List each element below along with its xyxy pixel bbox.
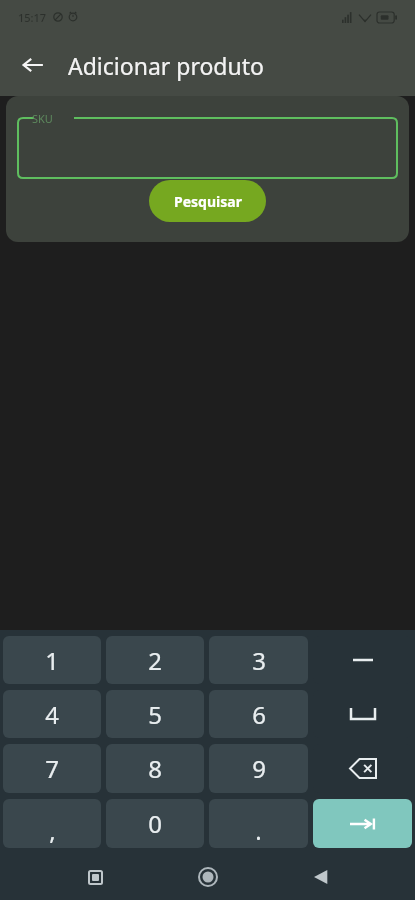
- staticText: 5: [148, 698, 162, 731]
- button[interactable]: 1: [3, 636, 101, 684]
- button[interactable]: Dash: [313, 636, 412, 684]
- button[interactable]: Back: [299, 855, 343, 899]
- staticText: Pesquisar: [174, 192, 242, 211]
- button[interactable]: Pesquisar: [149, 180, 266, 222]
- staticText: 1: [45, 644, 59, 677]
- button[interactable]: ,: [3, 799, 101, 848]
- staticText: 9: [252, 752, 266, 785]
- staticText: ,: [49, 814, 56, 847]
- staticText: 2: [148, 644, 162, 677]
- staticText: Adicionar produto: [68, 50, 264, 81]
- button[interactable]: 9: [209, 744, 308, 793]
- button[interactable]: 8: [106, 744, 204, 793]
- button[interactable]: Space: [313, 690, 412, 738]
- staticText: SKU: [32, 111, 53, 126]
- staticText: 7: [45, 752, 59, 785]
- button[interactable]: 7: [3, 744, 101, 793]
- button[interactable]: Recent apps: [73, 855, 117, 899]
- button[interactable]: [18, 118, 397, 178]
- staticText: 0: [148, 807, 162, 840]
- button[interactable]: 4: [3, 690, 101, 738]
- button[interactable]: Home: [186, 855, 230, 899]
- button[interactable]: .: [209, 799, 308, 848]
- button[interactable]: 0: [106, 799, 204, 848]
- button[interactable]: 6: [209, 690, 308, 738]
- button[interactable]: Backspace: [313, 744, 412, 793]
- button[interactable]: 3: [209, 636, 308, 684]
- staticText: 3: [252, 644, 266, 677]
- staticText: .: [255, 814, 262, 847]
- staticText: 4: [45, 698, 59, 731]
- button[interactable]: Enter: [313, 799, 412, 848]
- button[interactable]: 2: [106, 636, 204, 684]
- staticText: 6: [252, 698, 266, 731]
- button[interactable]: 5: [106, 690, 204, 738]
- staticText: 8: [148, 752, 162, 785]
- staticText: 15:17: [18, 10, 47, 25]
- button[interactable]: Back: [10, 42, 56, 88]
